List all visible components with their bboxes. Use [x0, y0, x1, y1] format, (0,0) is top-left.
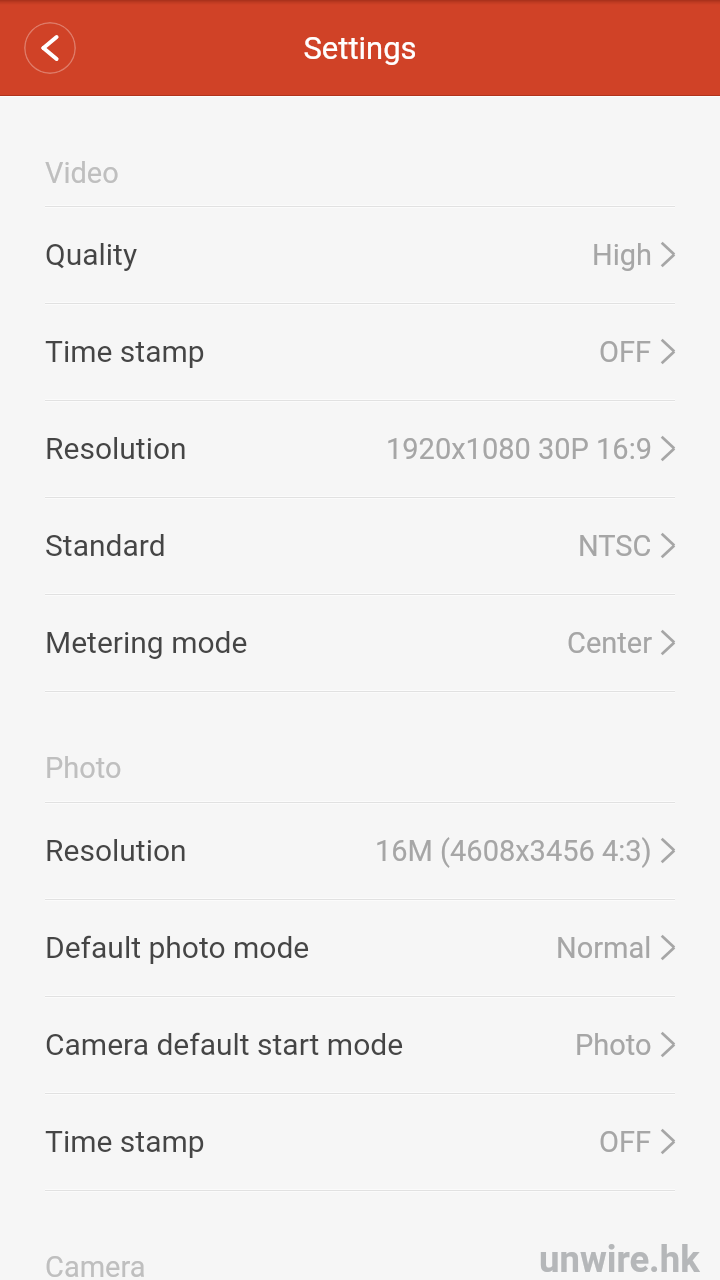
button[interactable]: Standard: [0, 497, 720, 594]
staticText: Camera default start mode: [45, 1027, 404, 1062]
staticText: Photo: [45, 751, 122, 785]
staticText: Metering mode: [45, 625, 248, 660]
staticText: Default photo mode: [45, 930, 310, 965]
staticText: Standard: [45, 528, 166, 563]
staticText: Center: [567, 626, 652, 660]
staticText: Time stamp: [45, 334, 205, 369]
button[interactable]: Metering mode: [0, 594, 720, 691]
staticText: 1920x1080 30P 16:9: [386, 432, 652, 466]
staticText: Normal: [556, 931, 652, 965]
button[interactable]: Quality: [0, 206, 720, 303]
button[interactable]: Camera default start mode: [0, 996, 720, 1093]
staticText: NTSC: [578, 529, 652, 563]
button[interactable]: Navigate back: [24, 22, 76, 74]
button[interactable]: Time stamp: [0, 303, 720, 400]
staticText: Video: [45, 156, 119, 190]
staticText: Settings: [0, 30, 720, 66]
staticText: Camera: [45, 1250, 146, 1280]
button[interactable]: Time stamp: [0, 1093, 720, 1190]
staticText: Resolution: [45, 431, 187, 466]
staticText: Resolution: [45, 833, 187, 868]
staticText: Time stamp: [45, 1124, 205, 1159]
button[interactable]: Resolution: [0, 400, 720, 497]
staticText: 16M (4608x3456 4:3): [375, 834, 652, 868]
button[interactable]: Resolution: [0, 802, 720, 899]
button[interactable]: Default photo mode: [0, 899, 720, 996]
staticText: OFF: [599, 1125, 652, 1159]
staticText: Quality: [45, 237, 138, 272]
staticText: High: [592, 238, 652, 272]
staticText: OFF: [599, 335, 652, 369]
staticText: Photo: [575, 1028, 652, 1062]
staticText: unwire.hk: [539, 1238, 700, 1280]
